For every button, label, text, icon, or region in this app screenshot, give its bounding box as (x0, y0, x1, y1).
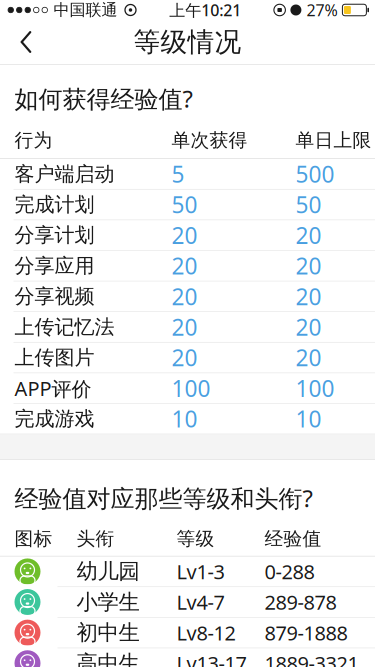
staticText: Lv8-12 (176, 619, 235, 646)
staticText: 20 (295, 312, 321, 342)
staticText: 50 (171, 189, 197, 220)
staticText: APP评价 (14, 375, 91, 401)
staticText: 20 (295, 220, 321, 250)
staticText: 幼儿园 (76, 558, 139, 584)
staticText: 20 (171, 342, 197, 373)
staticText: 小学生 (76, 589, 139, 615)
staticText: 1889-3321 (264, 650, 358, 667)
staticText: 完成游戏 (14, 406, 94, 431)
staticText: 行为 (14, 129, 52, 152)
staticText: 100 (171, 373, 210, 403)
staticText: 分享计划 (14, 223, 94, 247)
staticText: 图标 (14, 527, 52, 550)
staticText: 等级情况 (133, 26, 241, 58)
staticText: 客户端启动 (14, 162, 114, 186)
staticText: 20 (171, 220, 197, 250)
staticText: Lv4-7 (176, 589, 224, 615)
staticText: 如何获得经验值? (14, 82, 192, 114)
staticText: 分享视频 (14, 284, 94, 309)
staticText: 上午10:21 (169, 0, 241, 21)
staticText: 500 (295, 159, 334, 189)
staticText: Lv1-3 (176, 558, 224, 585)
staticText: 20 (171, 251, 197, 281)
staticText: 经验值 (264, 527, 321, 550)
staticText: 单次获得 (171, 129, 247, 152)
button[interactable]: 返回 (0, 20, 52, 64)
staticText: 20 (295, 281, 321, 311)
staticText: 289-878 (264, 589, 336, 615)
staticText: 中国联通 (53, 0, 117, 20)
staticText: 高中生 (76, 650, 139, 667)
staticText: 0-288 (264, 558, 314, 585)
staticText: 初中生 (76, 619, 139, 646)
staticText: 头衔 (76, 527, 114, 550)
staticText: 20 (171, 281, 197, 311)
staticText: 879-1888 (264, 619, 347, 646)
staticText: 5 (171, 159, 184, 189)
staticText: 单日上限 (295, 129, 371, 152)
staticText: Lv13-17 (176, 650, 246, 667)
staticText: 10 (171, 404, 197, 434)
staticText: 完成计划 (14, 192, 94, 217)
staticText: 等级 (176, 527, 214, 550)
staticText: 20 (295, 342, 321, 373)
staticText: 10 (295, 404, 321, 434)
staticText: 100 (295, 373, 334, 403)
staticText: 经验值对应那些等级和头衔? (14, 482, 312, 514)
staticText: 20 (295, 251, 321, 281)
staticText: 20 (171, 312, 197, 342)
staticText: 50 (295, 189, 321, 220)
staticText: 27% (306, 0, 337, 21)
staticText: 分享应用 (14, 253, 94, 278)
staticText: 上传记忆法 (14, 315, 114, 339)
staticText: 上传图片 (14, 345, 94, 370)
